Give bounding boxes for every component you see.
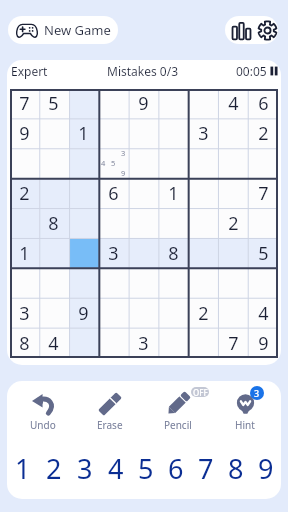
button[interactable]: 5: [248, 238, 278, 268]
button[interactable]: [98, 298, 128, 328]
button[interactable]: [248, 148, 278, 178]
button[interactable]: [68, 208, 98, 238]
button[interactable]: 3: [128, 328, 158, 358]
button[interactable]: [39, 178, 68, 208]
button[interactable]: [158, 118, 188, 148]
button[interactable]: 1: [7, 434, 38, 499]
button[interactable]: 3: [10, 298, 39, 328]
button[interactable]: [218, 238, 248, 268]
button[interactable]: [39, 118, 68, 148]
button[interactable]: [10, 208, 39, 238]
button[interactable]: [188, 328, 218, 358]
button[interactable]: Erase: [79, 381, 141, 434]
button[interactable]: [98, 328, 128, 358]
button[interactable]: [128, 148, 158, 178]
button[interactable]: [128, 118, 158, 148]
button[interactable]: [128, 208, 158, 238]
button[interactable]: 2: [248, 118, 278, 148]
button[interactable]: 9: [128, 89, 158, 118]
button[interactable]: [218, 298, 248, 328]
button[interactable]: Undo: [12, 381, 74, 434]
button[interactable]: [248, 208, 278, 238]
button[interactable]: [10, 148, 39, 178]
button[interactable]: 5: [131, 434, 161, 499]
button[interactable]: 4: [248, 298, 278, 328]
button[interactable]: 1: [10, 238, 39, 268]
staticText: 9: [258, 450, 274, 487]
button[interactable]: [158, 298, 188, 328]
button[interactable]: Settings: [256, 19, 278, 41]
button[interactable]: 1: [158, 178, 188, 208]
button[interactable]: 3: [98, 148, 128, 178]
button[interactable]: [188, 89, 218, 118]
button[interactable]: [188, 268, 218, 298]
button[interactable]: [158, 208, 188, 238]
button[interactable]: [68, 328, 98, 358]
staticText: 8: [19, 331, 30, 356]
button[interactable]: 7: [191, 434, 221, 499]
button[interactable]: [98, 268, 128, 298]
button[interactable]: [248, 268, 278, 298]
button[interactable]: [98, 89, 128, 118]
button[interactable]: [158, 148, 188, 178]
button[interactable]: 4: [39, 328, 68, 358]
button[interactable]: [68, 178, 98, 208]
button[interactable]: [98, 118, 128, 148]
button[interactable]: 9: [68, 298, 98, 328]
button[interactable]: 8: [10, 328, 39, 358]
button[interactable]: [39, 238, 68, 268]
button[interactable]: 9: [251, 434, 281, 499]
button[interactable]: 2: [10, 178, 39, 208]
button[interactable]: 3: [214, 381, 276, 434]
button[interactable]: 3: [98, 238, 128, 268]
button[interactable]: 9: [248, 328, 278, 358]
button[interactable]: [218, 118, 248, 148]
button[interactable]: [68, 89, 98, 118]
button[interactable]: [158, 268, 188, 298]
button[interactable]: [128, 268, 158, 298]
button[interactable]: [68, 268, 98, 298]
button[interactable]: [218, 268, 248, 298]
button[interactable]: [218, 148, 248, 178]
button[interactable]: 4: [100, 434, 131, 499]
button[interactable]: [158, 328, 188, 358]
button[interactable]: [128, 238, 158, 268]
button[interactable]: 5: [39, 89, 68, 118]
button[interactable]: [188, 148, 218, 178]
button[interactable]: [128, 178, 158, 208]
button[interactable]: 4: [218, 89, 248, 118]
button[interactable]: 8: [221, 434, 251, 499]
button[interactable]: [68, 238, 98, 268]
button[interactable]: [158, 89, 188, 118]
button[interactable]: [39, 298, 68, 328]
button[interactable]: 2: [218, 208, 248, 238]
button[interactable]: 1: [68, 118, 98, 148]
button[interactable]: 7: [10, 89, 39, 118]
button[interactable]: 2: [188, 298, 218, 328]
button[interactable]: Pause: [270, 66, 278, 76]
button[interactable]: [188, 238, 218, 268]
button[interactable]: [68, 148, 98, 178]
button[interactable]: Statistics: [231, 20, 252, 41]
button[interactable]: 8: [158, 238, 188, 268]
button[interactable]: [39, 268, 68, 298]
button[interactable]: [128, 298, 158, 328]
button[interactable]: 8: [39, 208, 68, 238]
button[interactable]: New Game: [8, 16, 118, 44]
button[interactable]: 9: [10, 118, 39, 148]
button[interactable]: 7: [218, 328, 248, 358]
button[interactable]: 6: [98, 178, 128, 208]
button[interactable]: 6: [248, 89, 278, 118]
button[interactable]: 6: [161, 434, 191, 499]
button[interactable]: 7: [248, 178, 278, 208]
button[interactable]: [39, 148, 68, 178]
button[interactable]: 3: [188, 118, 218, 148]
button[interactable]: [98, 208, 128, 238]
button[interactable]: [188, 178, 218, 208]
button[interactable]: [218, 178, 248, 208]
button[interactable]: 3: [69, 434, 100, 499]
button[interactable]: 2: [38, 434, 69, 499]
button[interactable]: OFF: [147, 381, 209, 434]
button[interactable]: [10, 268, 39, 298]
button[interactable]: [188, 208, 218, 238]
